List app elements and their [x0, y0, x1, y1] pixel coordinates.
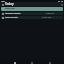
button[interactable]: Morning routine	[1, 12, 63, 15]
button[interactable]: Daily goal	[1, 7, 63, 11]
staticText: Daily goal	[5, 7, 15, 10]
button[interactable]: Profile	[47, 61, 53, 64]
button[interactable]: Focus session	[1, 16, 63, 19]
button[interactable]: Home	[12, 61, 18, 64]
staticText: 8:00 AM	[46, 12, 54, 15]
staticText: 10:30 AM	[42, 16, 51, 19]
button[interactable]: Tasks	[29, 61, 35, 64]
button[interactable]: Menu	[1, 3, 4, 6]
button[interactable]: Search	[60, 3, 63, 6]
staticText: Today	[5, 2, 14, 6]
staticText: Morning routine	[5, 12, 21, 15]
staticText: Focus session	[5, 16, 18, 19]
